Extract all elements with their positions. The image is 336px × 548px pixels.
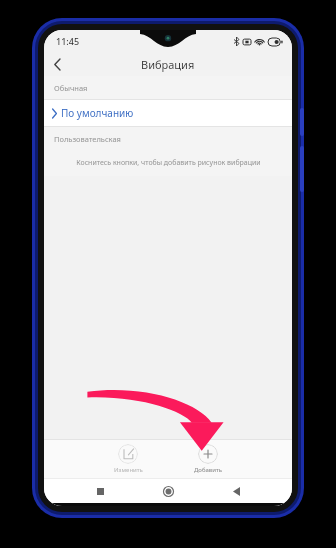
button[interactable]: По умолчанию xyxy=(44,100,292,126)
button[interactable]: Добавить xyxy=(181,442,235,476)
staticText: Обычная xyxy=(54,83,88,93)
button[interactable]: Home xyxy=(156,479,180,503)
button[interactable]: Back xyxy=(224,479,248,503)
staticText: Изменить xyxy=(114,466,143,474)
staticText: По умолчанию xyxy=(61,106,134,120)
staticText: 11:45 xyxy=(56,35,80,47)
staticText: Добавить xyxy=(194,466,223,474)
button[interactable]: Recent apps xyxy=(88,479,112,503)
staticText: Пользовательская xyxy=(54,134,121,144)
staticText: Вибрация xyxy=(141,57,195,72)
button[interactable]: Back xyxy=(44,52,70,76)
button[interactable]: Изменить xyxy=(101,442,155,476)
staticText: Коснитесь кнопки, чтобы добавить рисунок… xyxy=(76,158,261,168)
